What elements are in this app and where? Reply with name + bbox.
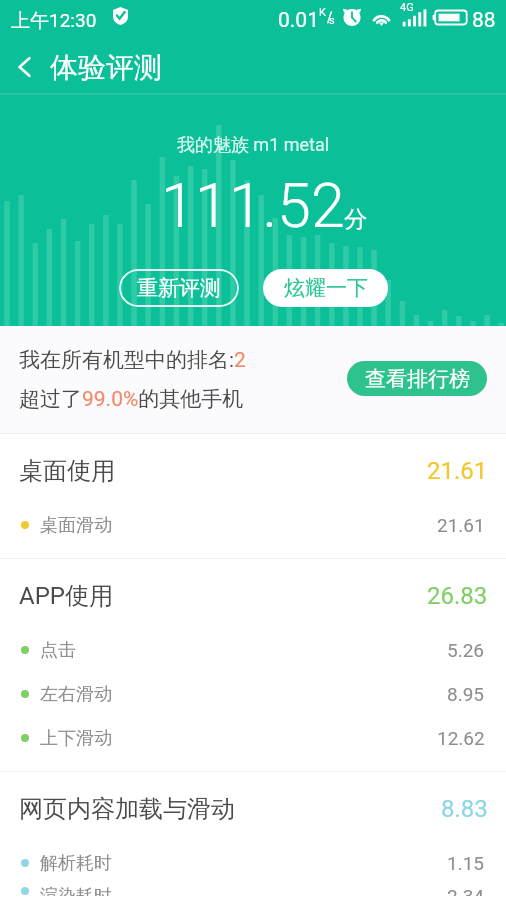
staticText: 21.61	[437, 514, 485, 536]
staticText: 桌面使用	[19, 456, 115, 486]
button[interactable]: 网页内容加载与滑动	[0, 772, 506, 845]
staticText: 我的魅族 m1 metal	[0, 134, 506, 157]
staticText: K	[319, 6, 326, 19]
staticText: 8.95	[447, 683, 485, 705]
staticText: 4G	[400, 1, 414, 14]
staticText: 88	[472, 8, 496, 33]
staticText: 查看排行榜	[365, 366, 470, 392]
staticText: 1.15	[447, 852, 485, 874]
staticText: 上午12:30	[11, 9, 97, 33]
staticText: 0.01	[278, 8, 319, 33]
staticText: 体验评测	[50, 50, 162, 85]
button[interactable]: 左右滑动	[0, 676, 506, 720]
staticText: 21.61	[427, 457, 488, 485]
staticText: 超过了99.0%的其他手机	[19, 386, 244, 412]
staticText: 111.52	[161, 170, 345, 241]
staticText: 左右滑动	[40, 683, 112, 706]
button[interactable]: 解析耗时	[0, 845, 506, 889]
button[interactable]: 上下滑动	[0, 720, 506, 764]
staticText: 网页内容加载与滑动	[19, 794, 235, 824]
staticText: 分	[344, 205, 367, 234]
staticText: 我在所有机型中的排名:2	[19, 347, 246, 373]
staticText: 26.83	[427, 582, 488, 610]
staticText: 重新评测	[137, 275, 221, 301]
staticText: 渲染耗时	[40, 885, 112, 896]
staticText: 上下滑动	[40, 727, 112, 750]
staticText: 12.62	[437, 727, 485, 749]
staticText: 5.26	[447, 639, 485, 661]
button[interactable]: APP使用	[0, 559, 506, 632]
button[interactable]: 渲染耗时	[0, 889, 506, 900]
staticText: s	[329, 14, 335, 27]
staticText: 点击	[40, 639, 76, 662]
staticText: 解析耗时	[40, 852, 112, 875]
button[interactable]: 炫耀一下	[263, 269, 388, 307]
button[interactable]: 桌面滑动	[0, 507, 506, 551]
button[interactable]: 桌面使用	[0, 434, 506, 507]
staticText: 桌面滑动	[40, 514, 112, 537]
staticText: 炫耀一下	[284, 275, 368, 301]
button[interactable]: 重新评测	[119, 269, 239, 307]
button[interactable]: 点击	[0, 632, 506, 676]
button[interactable]: Back	[0, 42, 50, 92]
staticText: APP使用	[19, 581, 113, 611]
staticText: 2.34	[447, 885, 485, 896]
button[interactable]: 查看排行榜	[347, 361, 487, 396]
staticText: 8.83	[441, 795, 488, 823]
